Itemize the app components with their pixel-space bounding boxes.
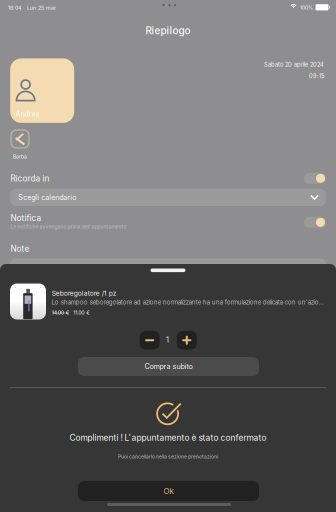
- staticText: 16:04 Lun 25 mar: [8, 5, 56, 11]
- staticText: 11.00 €: [73, 309, 90, 316]
- staticText: Scegli calendario: [18, 193, 76, 202]
- staticText: Ricorda in: [11, 174, 50, 184]
- staticText: Le notifiche avvengano prima dell'appunt…: [11, 224, 127, 230]
- staticText: Andrea: [15, 110, 39, 118]
- staticText: Complimenti ! L'appuntamento è stato con…: [69, 432, 266, 443]
- staticText: 14.00 €: [52, 309, 70, 316]
- staticText: Lo shampoo seboregolatore ad azione norm…: [52, 299, 325, 306]
- button[interactable]: Notifica: [304, 217, 326, 228]
- staticText: 1: [166, 335, 169, 344]
- button[interactable]: Compra subito: [78, 357, 259, 376]
- button[interactable]: Scegli calendario: [10, 189, 326, 206]
- staticText: Puoi cancellarlo nella sezione prenotazi…: [118, 453, 218, 460]
- staticText: 100%: [300, 4, 313, 11]
- staticText: Ok: [163, 486, 173, 496]
- staticText: Sabato 20 aprile 2024: [264, 61, 324, 68]
- button[interactable]: Diminuisci quantità: [140, 331, 160, 350]
- staticText: Riepilogo: [145, 24, 190, 37]
- staticText: Barba: [13, 153, 27, 160]
- button[interactable]: Barba: [11, 130, 29, 160]
- staticText: Compra subito: [144, 362, 192, 371]
- button[interactable]: Andrea: [10, 58, 74, 123]
- staticText: 09:15: [309, 73, 324, 79]
- staticText: Note: [11, 244, 30, 254]
- staticText: Seboregolatore /1 pz: [52, 289, 117, 297]
- button[interactable]: Aumenta quantità: [177, 331, 197, 350]
- button[interactable]: Ok: [78, 481, 259, 501]
- staticText: Notifica: [11, 213, 42, 223]
- button[interactable]: Ricorda in: [304, 173, 326, 184]
